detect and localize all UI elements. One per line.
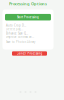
- staticText: Detect page edges: [6, 27, 24, 31]
- staticText: Processing Options: [9, 1, 47, 6]
- staticText: Save to Photos Library: [6, 40, 35, 44]
- staticText: Enhance Scan Quality: [6, 32, 28, 35]
- staticText: Auto Crop Detection: [6, 24, 27, 27]
- button[interactable]: Start Processing: [5, 14, 51, 20]
- button[interactable]: Cancel Processing: [12, 51, 47, 56]
- staticText: Improve contrast and sharpness: [6, 35, 34, 39]
- staticText: Cancel Processing: [16, 52, 42, 55]
- staticText: Start Processing: [17, 15, 39, 19]
